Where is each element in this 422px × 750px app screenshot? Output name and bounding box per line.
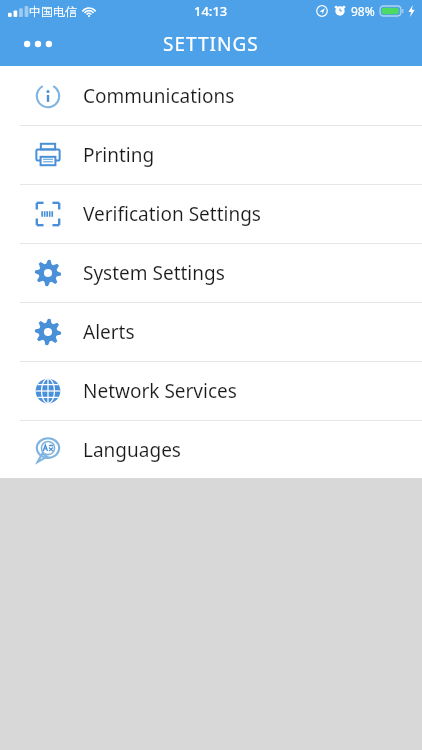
button[interactable]: Printing bbox=[0, 126, 422, 184]
staticText: Network Services bbox=[83, 378, 237, 404]
staticText: System Settings bbox=[83, 260, 225, 286]
button[interactable]: More options bbox=[14, 24, 62, 64]
button[interactable]: Languages bbox=[0, 421, 422, 478]
button[interactable]: Alerts bbox=[0, 303, 422, 361]
staticText: Verification Settings bbox=[83, 201, 261, 227]
staticText: Communications bbox=[83, 83, 235, 109]
button[interactable]: Verification Settings bbox=[0, 185, 422, 243]
staticText: Alerts bbox=[83, 319, 135, 345]
button[interactable]: Network Services bbox=[0, 362, 422, 420]
staticText: Printing bbox=[83, 142, 155, 168]
button[interactable]: System Settings bbox=[0, 244, 422, 302]
staticText: 98% bbox=[351, 3, 375, 19]
staticText: 中国电信 bbox=[29, 4, 77, 19]
staticText: 14:13 bbox=[194, 2, 228, 20]
staticText: SETTINGS bbox=[163, 31, 259, 57]
button[interactable]: Communications bbox=[0, 66, 422, 125]
staticText: Languages bbox=[83, 437, 181, 463]
